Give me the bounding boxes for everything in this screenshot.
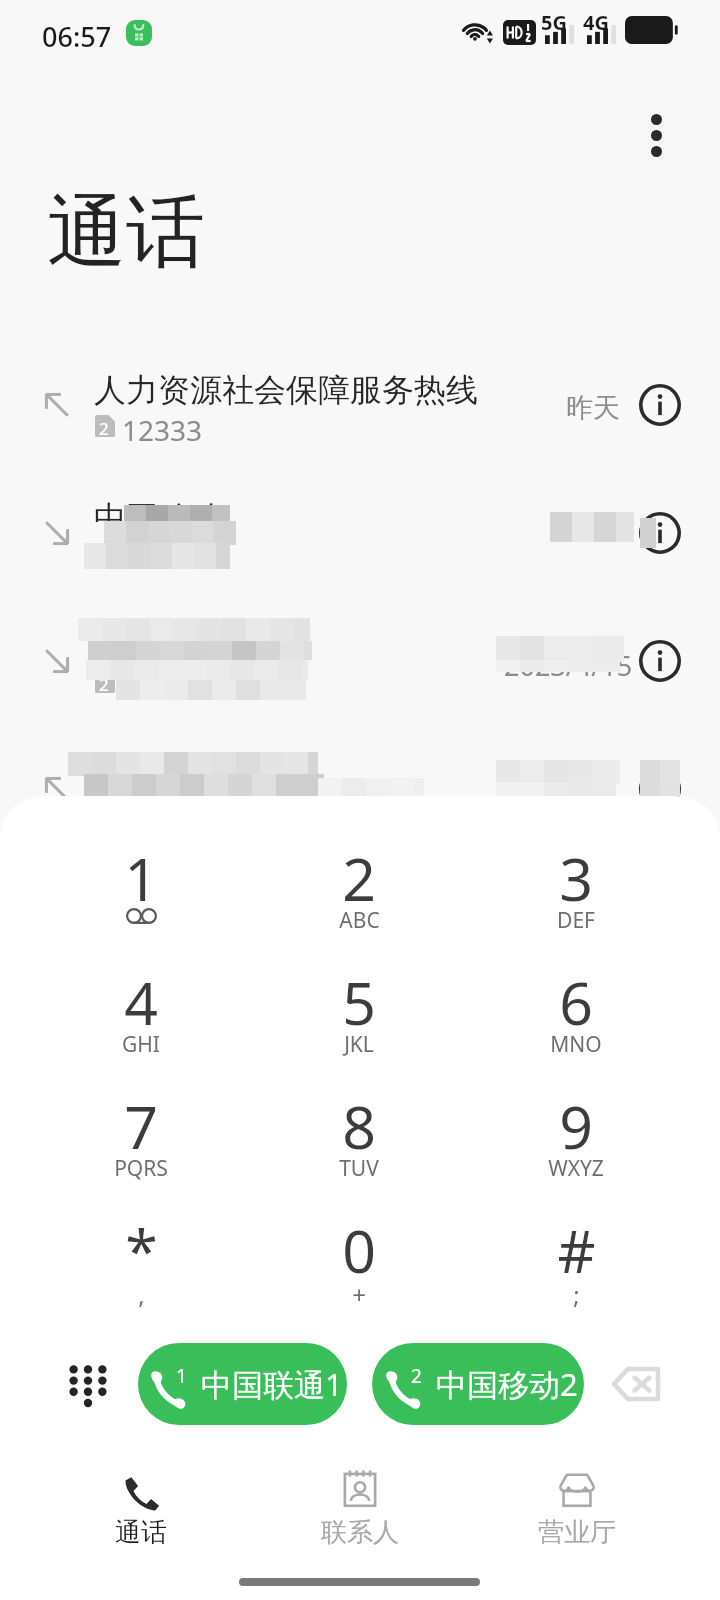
staticText: GHI	[122, 1030, 160, 1059]
staticText: 06:57	[42, 18, 112, 55]
staticText: 0	[342, 1210, 376, 1290]
staticText: *	[125, 1210, 158, 1290]
staticText: 通话	[47, 183, 205, 283]
staticText: 昨天	[566, 391, 620, 425]
staticText: TUV	[339, 1154, 379, 1183]
staticText: MNO	[550, 1030, 602, 1059]
button[interactable]: *	[33, 1184, 249, 1316]
staticText: 通话	[115, 1516, 167, 1549]
button[interactable]: 人力资源社会保障服务热线	[0, 341, 720, 469]
staticText: 某某某某某某	[94, 754, 286, 794]
button[interactable]: 2	[372, 1343, 584, 1425]
staticText: 2	[342, 838, 376, 918]
button[interactable]: 6	[468, 936, 684, 1068]
staticText: ,	[138, 1278, 145, 1311]
button[interactable]: #	[468, 1184, 684, 1316]
staticText: DEF	[557, 906, 595, 935]
button[interactable]: 某某某某某某	[0, 597, 720, 725]
staticText: 8	[342, 1086, 376, 1166]
button[interactable]: Call details	[628, 501, 692, 565]
staticText: 12333	[122, 411, 203, 449]
staticText: 139001390	[122, 795, 267, 833]
button[interactable]: 1	[138, 1343, 347, 1425]
staticText: 联系人	[321, 1516, 399, 1549]
staticText: 中国联通1	[201, 1363, 343, 1405]
staticText: 人力资源社会保障服务热线	[94, 370, 478, 410]
staticText: 2	[99, 673, 109, 696]
staticText: ABC	[339, 906, 380, 935]
staticText: JKL	[344, 1030, 374, 1059]
staticText: +	[352, 1278, 366, 1311]
staticText: ;	[573, 1278, 580, 1311]
staticText: 中国移动	[94, 498, 222, 538]
button[interactable]: 8	[251, 1060, 467, 1192]
button[interactable]: Backspace	[600, 1348, 672, 1420]
staticText: 7	[124, 1086, 158, 1166]
button[interactable]: 通话	[61, 1468, 221, 1578]
button[interactable]: 营业厅	[497, 1468, 657, 1578]
button[interactable]: 1	[33, 812, 249, 944]
button[interactable]: 0	[251, 1184, 467, 1316]
button[interactable]: 2	[251, 812, 467, 944]
staticText: 2023/4/1	[506, 775, 619, 812]
button[interactable]: 某某某某某某	[0, 725, 720, 853]
staticText: 1	[176, 1363, 187, 1389]
button[interactable]: 4	[33, 936, 249, 1068]
staticText: 4	[124, 962, 158, 1042]
staticText: 10086	[122, 539, 203, 577]
staticText: 5	[342, 962, 376, 1042]
staticText: #	[557, 1210, 596, 1290]
staticText: PQRS	[114, 1154, 168, 1183]
staticText: 4G	[583, 9, 609, 36]
button[interactable]: 中国移动	[0, 469, 720, 597]
staticText: 6	[559, 962, 593, 1042]
staticText: 2023/4/15	[504, 647, 633, 684]
button[interactable]: Call details	[628, 629, 692, 693]
staticText: 某某某某某某	[94, 626, 286, 666]
button[interactable]: 联系人	[280, 1468, 440, 1578]
staticText: 2	[411, 1363, 422, 1389]
button[interactable]: 5	[251, 936, 467, 1068]
staticText: 中国移动2	[436, 1363, 578, 1405]
button[interactable]: 7	[33, 1060, 249, 1192]
staticText: 9	[559, 1086, 593, 1166]
staticText: WXYZ	[548, 1154, 604, 1183]
staticText: 1	[124, 838, 158, 918]
staticText: 2	[99, 417, 109, 440]
button[interactable]: More options	[620, 99, 692, 171]
staticText: 138001380	[122, 667, 267, 705]
staticText: 3	[559, 838, 593, 918]
button[interactable]: Call details	[628, 757, 692, 821]
staticText: 2	[99, 545, 109, 568]
staticText: 营业厅	[538, 1516, 616, 1549]
staticText: 5G	[541, 9, 567, 36]
button[interactable]: Call details	[628, 373, 692, 437]
button[interactable]: Hide keypad	[52, 1349, 124, 1421]
button[interactable]: 9	[468, 1060, 684, 1192]
button[interactable]: 3	[468, 812, 684, 944]
